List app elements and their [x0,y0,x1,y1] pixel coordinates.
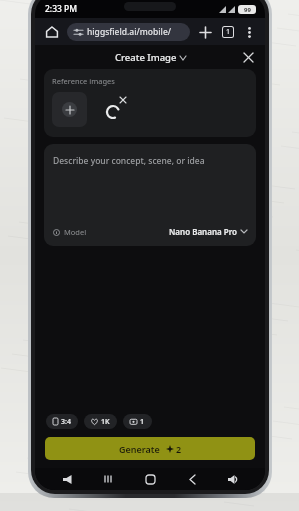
staticText: Create Image [115,51,177,64]
button[interactable]: 3:4 [46,414,78,429]
button[interactable]: Nano Banana Pro [169,226,247,237]
button[interactable]: Volume down [57,469,77,489]
staticText: Model [64,227,87,237]
button[interactable]: 1K [84,414,117,429]
button[interactable]: 1 [123,414,152,429]
staticText: 2:33 PM [45,3,78,15]
button[interactable]: Home [140,469,160,489]
staticText: 1 [226,27,231,37]
staticText: 2 [176,443,182,455]
button[interactable]: Back [182,469,202,489]
staticText: 1K [101,417,110,427]
staticText: higgsfield.ai/mobile/ [87,26,172,38]
button[interactable]: New tab [196,23,214,41]
staticText: 1 [140,417,145,427]
button[interactable]: Remove image [118,95,128,105]
button[interactable]: More options [240,23,258,41]
staticText: Reference images [52,76,115,86]
button[interactable]: Reference images [44,69,256,137]
button[interactable]: Generate [45,437,255,460]
button[interactable]: Add reference image [52,92,87,127]
button[interactable]: Close [239,48,257,66]
staticText: Nano Banana Pro [169,226,237,237]
button[interactable]: higgsfield.ai/mobile/ [67,23,190,41]
button[interactable]: Tabs [219,23,237,41]
button[interactable]: Describe your concept, scene, or idea [44,144,256,246]
button[interactable]: Recents [98,469,118,489]
button[interactable]: Volume up [223,469,243,489]
staticText: 3:4 [61,417,71,427]
staticText: Describe your concept, scene, or idea [53,155,205,167]
staticText: Generate [119,443,160,455]
staticText: 99 [244,6,251,14]
button[interactable]: Home [42,22,62,42]
button[interactable]: Create Image [115,51,186,64]
